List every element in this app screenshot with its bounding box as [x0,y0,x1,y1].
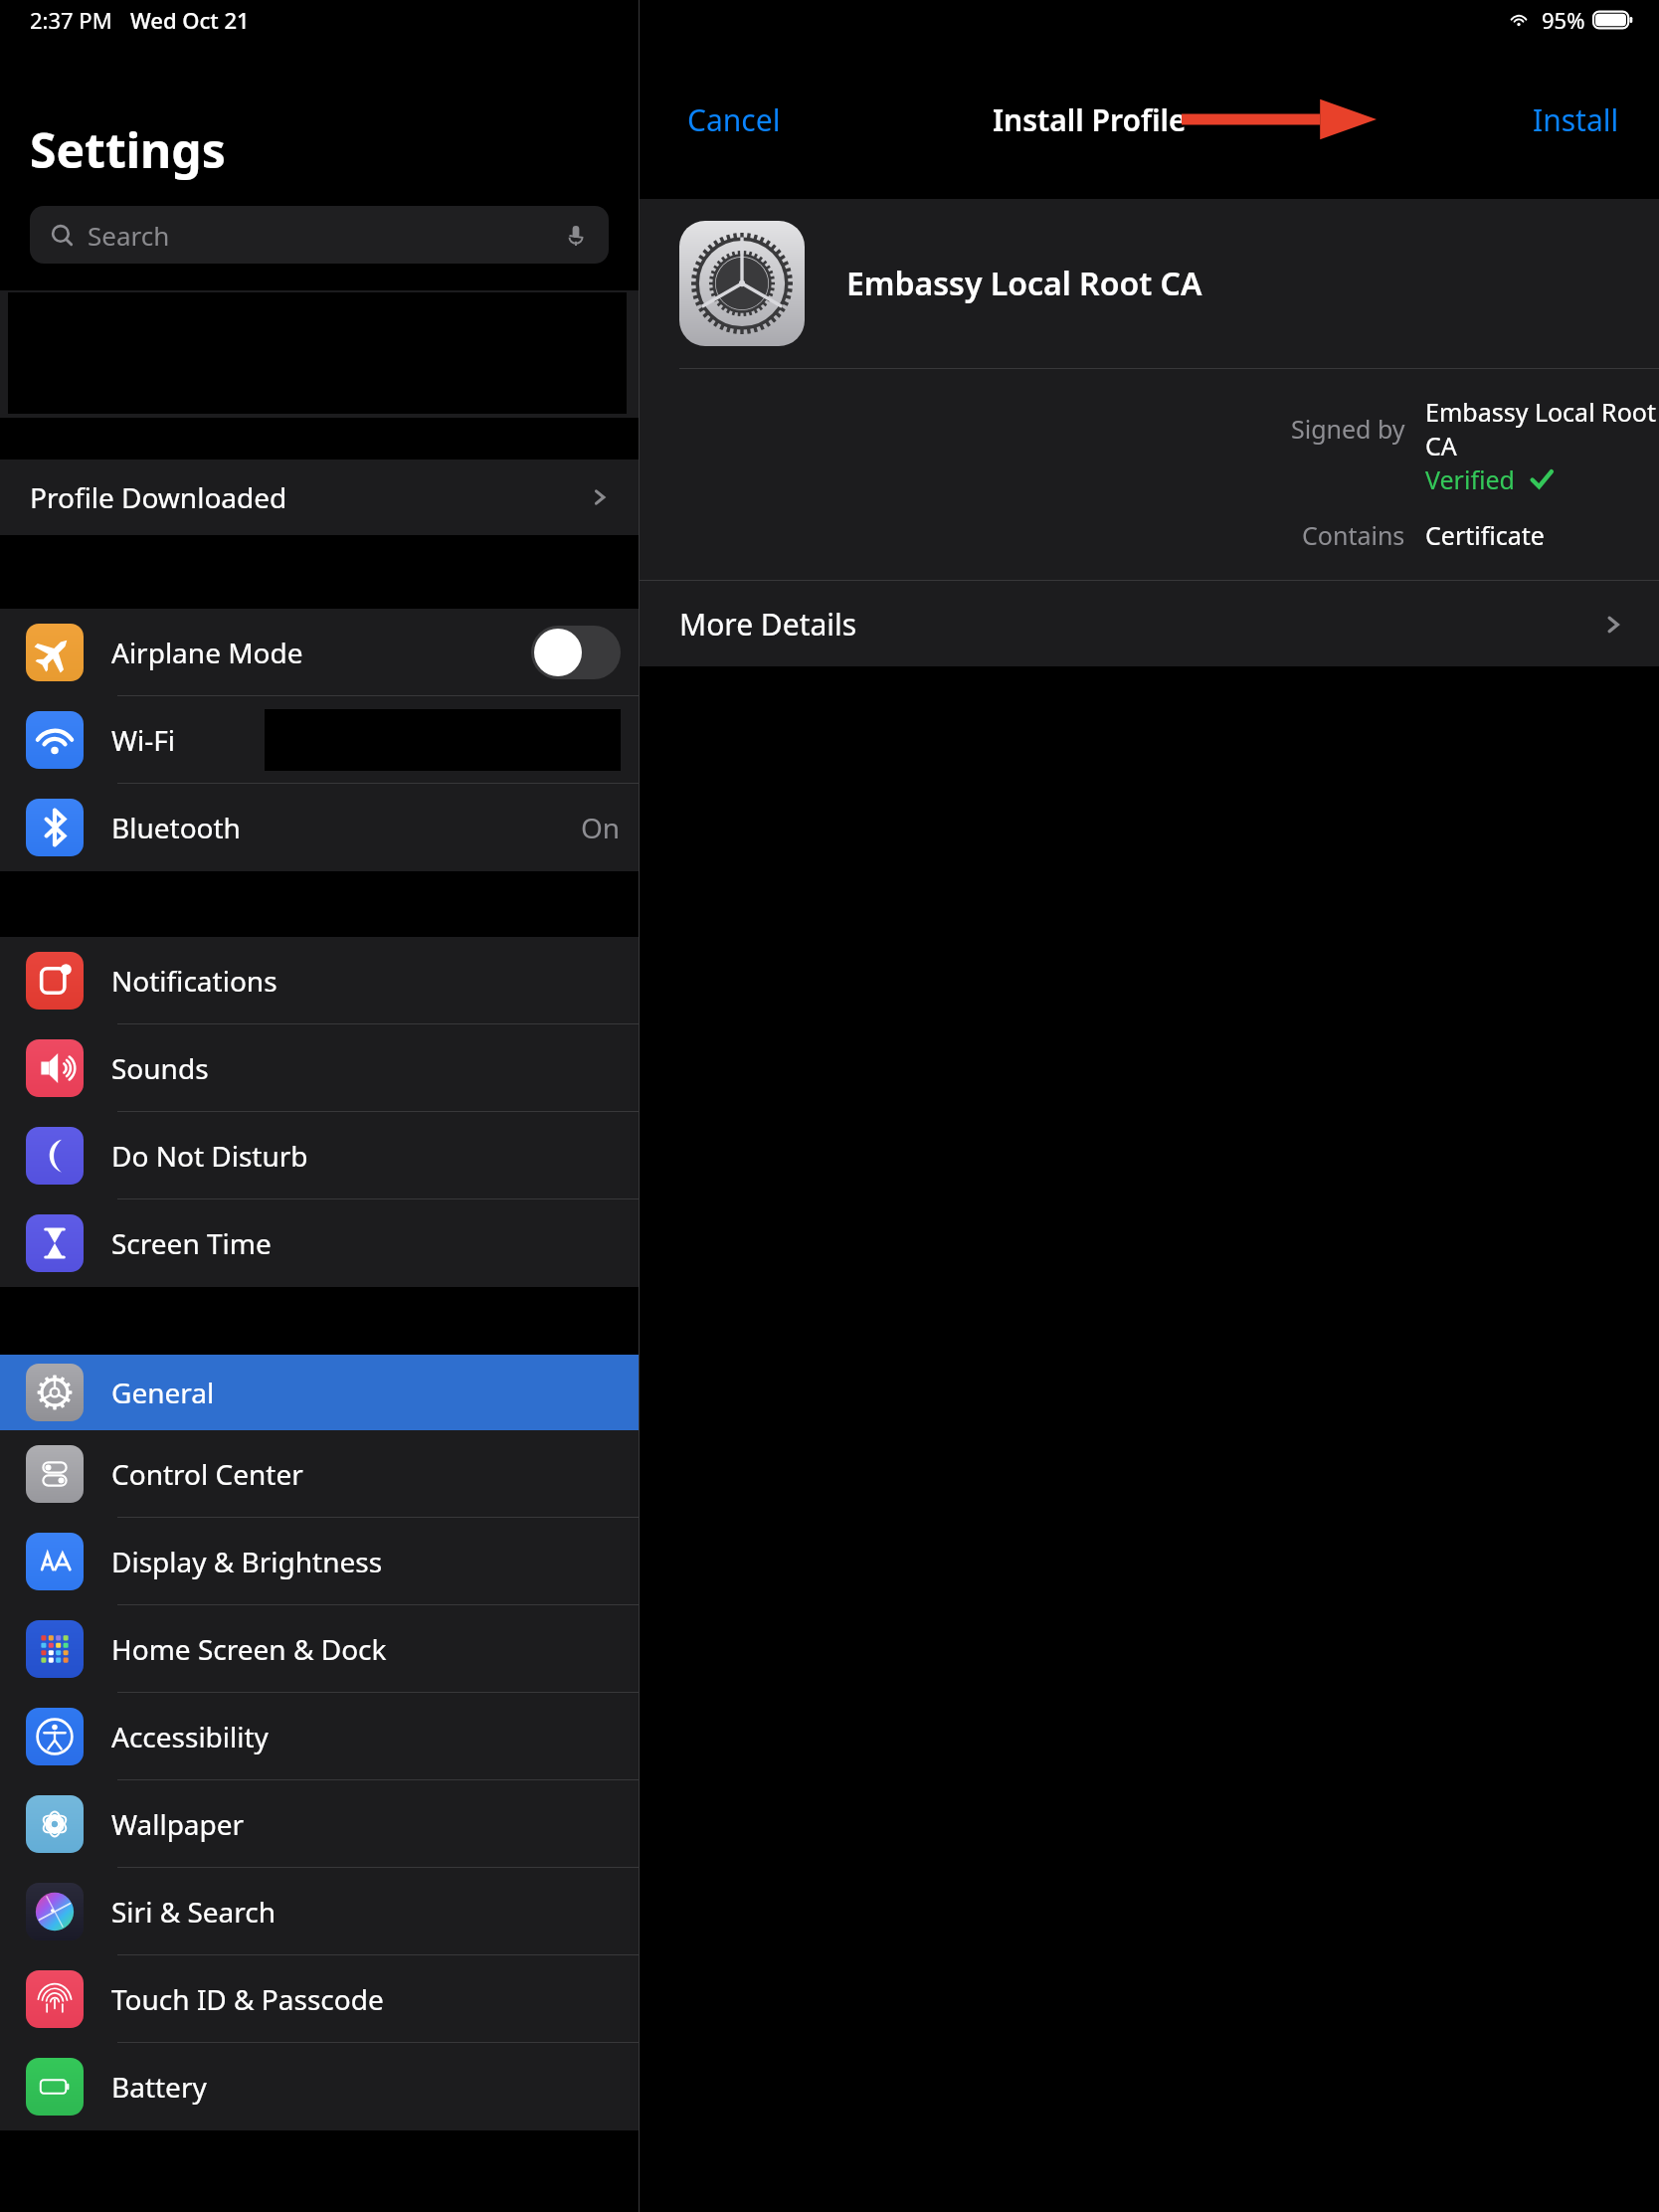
button[interactable]: Home Screen & Dock [0,1605,639,1693]
button[interactable]: Accessibility [0,1693,639,1780]
staticText: Accessibility [111,1718,269,1755]
staticText: Wed Oct 21 [130,5,250,35]
button[interactable]: More Details [640,581,1659,666]
staticText: Contains [1302,518,1405,552]
staticText: General [111,1374,215,1411]
button[interactable]: Bluetooth [0,784,639,871]
staticText: Signed by [1291,412,1405,446]
staticText: Install [1533,99,1619,140]
staticText: On [581,809,621,846]
staticText: Battery [111,2068,207,2106]
button[interactable]: Battery [0,2043,639,2130]
staticText: Wi-Fi [111,721,176,759]
staticText: Display & Brightness [111,1543,383,1580]
button[interactable]: Touch ID & Passcode [0,1955,639,2043]
button[interactable]: Siri & Search [0,1868,639,1955]
staticText: Airplane Mode [111,634,303,671]
button[interactable]: Profile Downloaded [0,460,639,535]
staticText: Search [88,218,170,253]
button[interactable]: Screen Time [0,1199,639,1287]
button[interactable]: General [0,1355,639,1430]
button[interactable]: Sounds [0,1024,639,1112]
button[interactable]: Wi-Fi [0,696,639,784]
button[interactable]: Notifications [0,937,639,1024]
button[interactable]: Install [1525,92,1627,148]
staticText: Do Not Disturb [111,1137,308,1175]
staticText: Install Profile [993,99,1187,140]
staticText: Embassy Local Root CA [1425,395,1659,462]
button[interactable]: Airplane Mode toggle [531,626,621,679]
staticText: Profile Downloaded [30,478,287,516]
button[interactable]: Display & Brightness [0,1518,639,1605]
staticText: Sounds [111,1049,209,1087]
staticText: More Details [679,604,857,645]
staticText: Cancel [687,99,781,140]
button[interactable]: Control Center [0,1430,639,1518]
staticText: 2:37 PM [30,5,112,35]
staticText: Embassy Local Root CA [846,262,1202,305]
staticText: Touch ID & Passcode [111,1980,384,2018]
staticText: 95% [1542,5,1585,35]
button[interactable]: Airplane Mode [0,609,639,696]
staticText: Screen Time [111,1224,272,1262]
staticText: Verified [1425,462,1515,496]
staticText: Siri & Search [111,1893,276,1931]
staticText: Certificate [1425,518,1545,552]
staticText: Notifications [111,962,277,1000]
button[interactable]: Do Not Disturb [0,1112,639,1199]
staticText: Bluetooth [111,809,241,846]
button[interactable]: Search [30,206,609,264]
staticText: Settings [30,117,226,182]
staticText: Home Screen & Dock [111,1630,387,1668]
button[interactable]: Wallpaper [0,1780,639,1868]
staticText: Control Center [111,1455,303,1493]
button[interactable]: Cancel [679,92,789,148]
staticText: Wallpaper [111,1805,245,1843]
